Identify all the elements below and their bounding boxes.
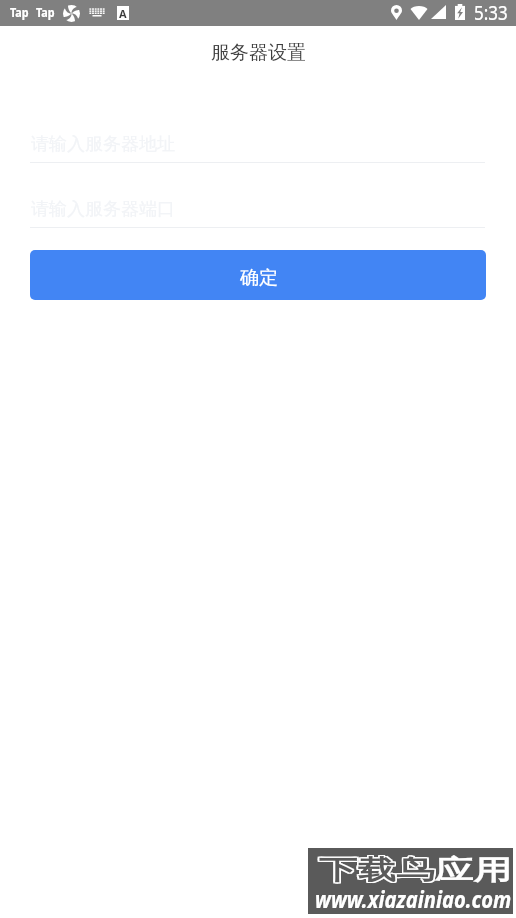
staticText: 下载鸟	[319, 852, 435, 885]
staticText: 下载鸟	[320, 854, 436, 887]
staticText: 请输入服务器端口	[31, 198, 175, 221]
button[interactable]: 请输入服务器地址	[30, 128, 486, 163]
staticText: 下载鸟	[320, 852, 436, 885]
staticText: 下载鸟	[319, 853, 435, 886]
staticText: 服务器设置	[211, 41, 306, 65]
staticText: www.xiazainiao.com	[315, 884, 512, 915]
button[interactable]: 确定	[30, 250, 486, 300]
staticText: 下载鸟	[319, 854, 435, 887]
staticText: A	[119, 6, 127, 20]
staticText: Tap	[36, 4, 55, 20]
staticText: Tap	[10, 4, 29, 20]
staticText: 请输入服务器地址	[31, 133, 175, 156]
button[interactable]: 请输入服务器端口	[30, 193, 486, 228]
staticText: 下载鸟	[318, 853, 433, 886]
staticText: 下载鸟	[318, 854, 433, 887]
staticText: 5:33	[474, 0, 508, 26]
staticText: 下载鸟	[320, 853, 436, 886]
staticText: 下载鸟	[318, 852, 433, 885]
staticText: 应用	[435, 853, 512, 886]
staticText: 确定	[240, 266, 278, 290]
